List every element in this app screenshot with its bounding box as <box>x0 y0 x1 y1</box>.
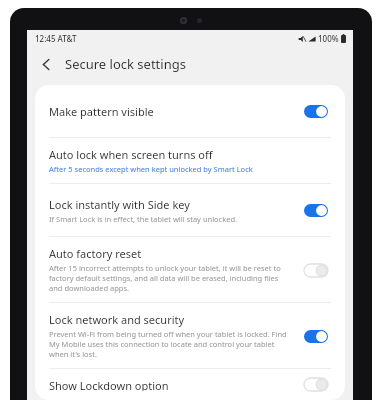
button[interactable]: Lock instantly with Side key <box>35 184 345 236</box>
staticText: 12:45 AT&T <box>35 33 77 44</box>
staticText: Auto factory reset <box>49 246 142 261</box>
staticText: If Smart Lock is in effect, the tablet w… <box>49 214 238 224</box>
button[interactable]: Lock network and security <box>35 303 345 368</box>
staticText: Secure lock settings <box>65 55 186 73</box>
button[interactable]: Show Lockdown option <box>35 369 345 400</box>
button[interactable]: Toggle <box>297 94 335 128</box>
staticText: Prevent Wi-Fi from being turned off when… <box>49 329 291 359</box>
button[interactable]: Toggle <box>297 319 335 353</box>
button[interactable]: Toggle <box>297 378 335 391</box>
button[interactable]: Auto factory reset <box>35 237 345 302</box>
staticText: After 15 incorrect attempts to unlock yo… <box>49 263 291 293</box>
staticText: Show Lockdown option <box>49 378 169 391</box>
staticText: After 5 seconds except when kept unlocke… <box>49 164 253 174</box>
button[interactable]: Toggle <box>297 253 335 287</box>
button[interactable]: Make pattern visible <box>35 85 345 137</box>
button[interactable]: Toggle <box>297 193 335 227</box>
staticText: 100% <box>318 33 339 44</box>
staticText: Lock instantly with Side key <box>49 197 190 212</box>
button[interactable]: Back <box>31 49 61 79</box>
staticText: Lock network and security <box>49 312 185 327</box>
staticText: Make pattern visible <box>49 104 154 119</box>
staticText: Auto lock when screen turns off <box>49 147 213 162</box>
button[interactable]: Auto lock when screen turns off <box>35 138 345 183</box>
